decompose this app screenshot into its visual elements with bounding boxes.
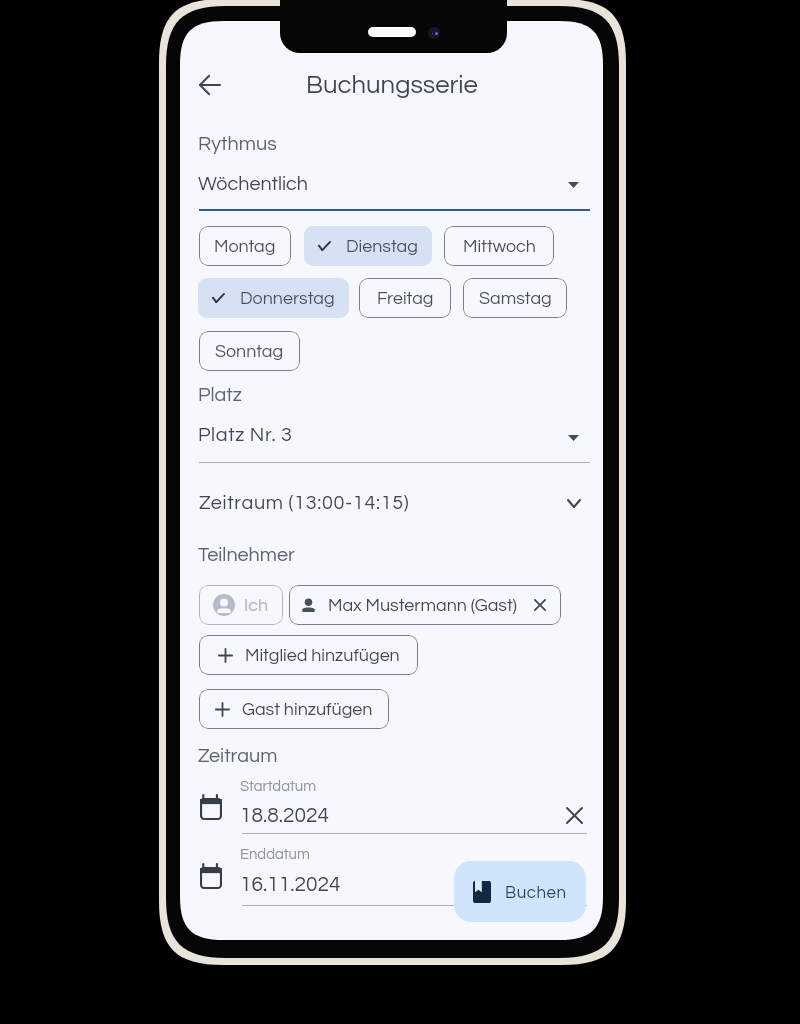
staticText: Zeitraum (13:00-14:15) <box>199 493 410 513</box>
staticText: Gast hinzufügen <box>242 700 373 718</box>
staticText: 16.11.2024 <box>240 874 341 896</box>
button[interactable]: Donnerstag <box>198 278 349 318</box>
button[interactable]: Back <box>189 64 230 105</box>
button[interactable]: Max Mustermann (Gast) <box>289 585 561 625</box>
staticText: Teilnehmer <box>198 545 295 565</box>
button[interactable]: Mitglied hinzufügen <box>199 635 418 675</box>
staticText: Wöchentlich <box>198 174 308 194</box>
button[interactable]: Clear start date <box>561 802 587 828</box>
button[interactable]: Gast hinzufügen <box>199 689 389 729</box>
staticText: Ich <box>244 596 269 614</box>
staticText: Samstag <box>479 289 552 307</box>
staticText: Rythmus <box>198 134 277 154</box>
button[interactable]: Freitag <box>359 278 451 318</box>
staticText: Platz <box>198 385 242 405</box>
staticText: Startdatum <box>240 779 317 794</box>
staticText: Dienstag <box>346 237 418 255</box>
staticText: Platz Nr. 3 <box>198 425 293 445</box>
staticText: Donnerstag <box>240 289 335 307</box>
staticText: Buchungsserie <box>306 72 478 98</box>
staticText: Enddatum <box>240 847 310 862</box>
button[interactable]: Samstag <box>463 278 567 318</box>
staticText: Mittwoch <box>463 237 536 255</box>
button[interactable]: Dienstag <box>304 226 432 266</box>
button[interactable]: Buchen <box>454 861 586 922</box>
button[interactable]: Mittwoch <box>444 226 554 266</box>
staticText: Zeitraum <box>198 746 278 766</box>
button[interactable]: Sonntag <box>199 331 300 371</box>
staticText: Buchen <box>505 884 567 901</box>
staticText: Max Mustermann (Gast) <box>328 596 517 614</box>
button[interactable]: Ich <box>199 585 283 625</box>
button[interactable]: Select court <box>568 435 603 459</box>
staticText: Mitglied hinzufügen <box>245 646 400 664</box>
staticText: Montag <box>214 237 276 255</box>
button[interactable]: Select rhythm <box>568 182 603 206</box>
button[interactable]: Remove guest <box>531 596 549 614</box>
button[interactable]: Montag <box>199 226 291 266</box>
staticText: Sonntag <box>215 342 284 360</box>
staticText: Freitag <box>377 289 434 307</box>
staticText: 18.8.2024 <box>240 805 329 827</box>
button[interactable]: Zeitraum (13:00-14:15) <box>199 487 590 519</box>
